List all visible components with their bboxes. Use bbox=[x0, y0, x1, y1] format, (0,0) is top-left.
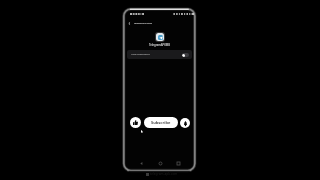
staticText: TelegramAPKMB bbox=[134, 22, 152, 25]
staticText: TelegramAPKMB bbox=[124, 43, 195, 47]
staticText: Allow notifications bbox=[131, 53, 150, 56]
button[interactable]: Notifications bbox=[180, 118, 190, 128]
button[interactable]: Allow notifications bbox=[127, 50, 192, 59]
staticText: telegram-apk.com bbox=[150, 172, 178, 176]
staticText: Subscribe bbox=[151, 120, 171, 125]
button[interactable]: Home bbox=[157, 160, 163, 166]
button[interactable]: Subscribe bbox=[144, 117, 178, 128]
button[interactable]: Back bbox=[127, 21, 132, 26]
button[interactable]: Back bbox=[138, 160, 144, 166]
button[interactable]: Recents bbox=[175, 160, 181, 166]
button[interactable]: Like bbox=[130, 117, 141, 128]
